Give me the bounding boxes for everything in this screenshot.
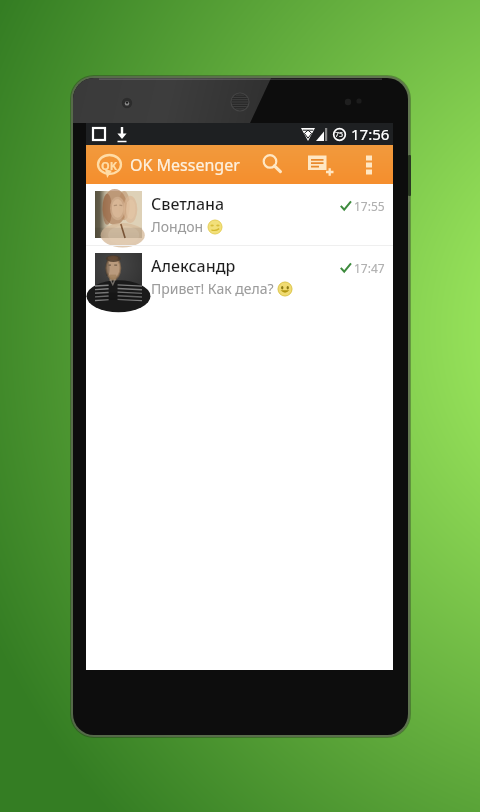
- button[interactable]: Светлана: [86, 184, 393, 245]
- staticText: Лондон: [151, 217, 204, 236]
- button[interactable]: Search: [253, 145, 292, 184]
- staticText: 17:55: [354, 198, 385, 214]
- staticText: Светлана: [151, 193, 225, 215]
- button[interactable]: More options: [353, 145, 385, 184]
- button[interactable]: New message: [301, 145, 340, 184]
- button[interactable]: Александр: [86, 246, 393, 307]
- staticText: 17:47: [354, 260, 385, 276]
- staticText: 17:56: [351, 124, 390, 144]
- staticText: OK Messenger: [130, 154, 240, 176]
- staticText: Александр: [151, 255, 236, 277]
- staticText: 75: [335, 130, 344, 140]
- staticText: Привет! Как дела?: [151, 279, 274, 298]
- staticText: OK: [101, 158, 118, 173]
